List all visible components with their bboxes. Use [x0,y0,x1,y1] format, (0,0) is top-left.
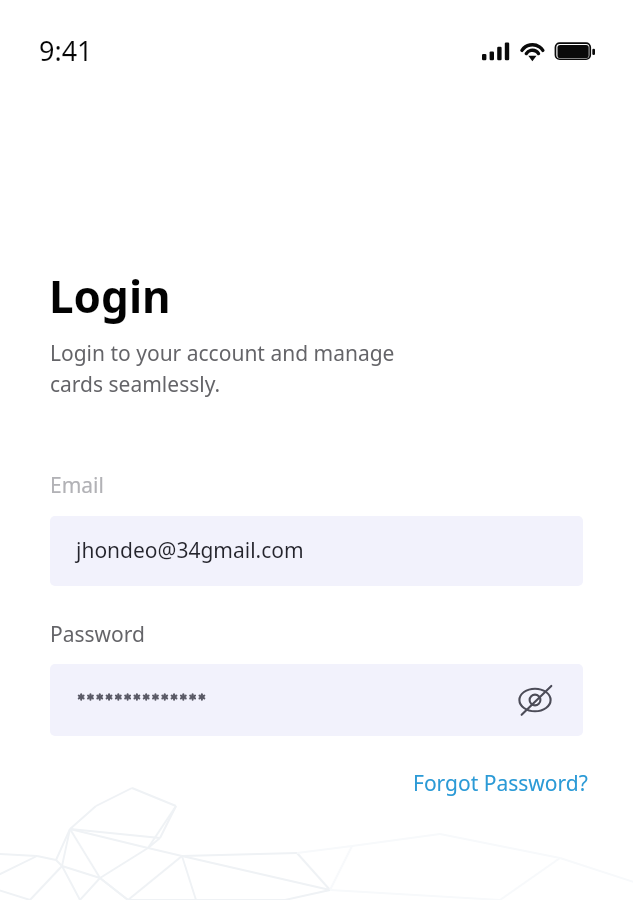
button[interactable]: jhondeo@34gmail.com [50,516,583,586]
button[interactable]: Show password [50,664,583,736]
staticText: jhondeo@34gmail.com [76,536,304,565]
staticText: 9:41 [39,32,93,69]
staticText: Password [50,620,145,649]
staticText: Login [49,266,171,326]
button[interactable]: Forgot Password? [405,761,596,806]
staticText: Forgot Password? [413,769,588,798]
staticText: Login to your account and manage cards s… [50,339,395,398]
button[interactable]: Show password [513,678,557,722]
staticText: Email [50,471,104,500]
